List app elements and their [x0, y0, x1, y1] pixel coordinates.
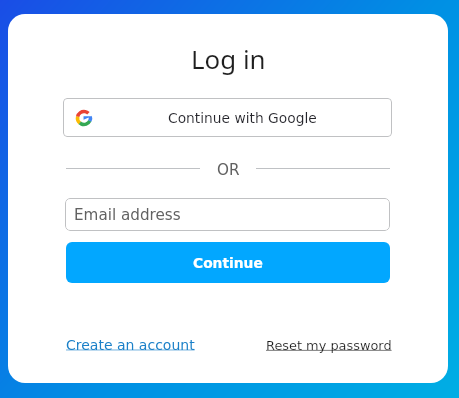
staticText: Continue with Google: [168, 110, 317, 126]
button[interactable]: Continue with Google: [63, 98, 392, 137]
button[interactable]: Reset my password: [266, 338, 392, 353]
staticText: Continue: [193, 255, 263, 271]
button[interactable]: Continue: [66, 242, 390, 283]
staticText: Log in: [191, 41, 266, 76]
staticText: OR: [217, 161, 240, 179]
staticText: Email address: [74, 206, 181, 224]
button[interactable]: Create an account: [66, 337, 195, 353]
button[interactable]: Email address: [65, 198, 390, 231]
